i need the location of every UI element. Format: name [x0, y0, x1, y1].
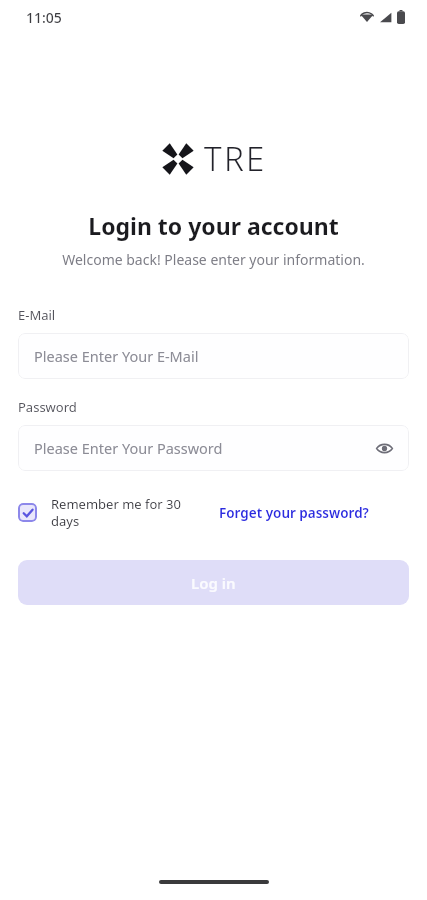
staticText: Please Enter Your Password	[34, 438, 223, 458]
button[interactable]: Remember me for 30 days	[18, 495, 209, 530]
staticText: Login to your account	[0, 210, 427, 241]
staticText: Please Enter Your E-Mail	[34, 346, 199, 366]
staticText: Forget your password?	[219, 504, 369, 522]
button[interactable]: Log in	[18, 560, 409, 605]
staticText: Log in	[191, 573, 236, 593]
staticText: Password	[18, 398, 77, 416]
staticText: Welcome back! Please enter your informat…	[0, 250, 427, 269]
button[interactable]: Forget your password?	[217, 500, 371, 526]
button[interactable]: Please Enter Your Password	[18, 425, 409, 471]
staticText: E-Mail	[18, 306, 56, 324]
staticText: 11:05	[26, 8, 62, 27]
button[interactable]: Please Enter Your E-Mail	[18, 333, 409, 379]
staticText: Remember me for 30 days	[51, 495, 203, 530]
staticText: TRE	[204, 136, 267, 181]
button[interactable]: Show password	[369, 433, 399, 463]
